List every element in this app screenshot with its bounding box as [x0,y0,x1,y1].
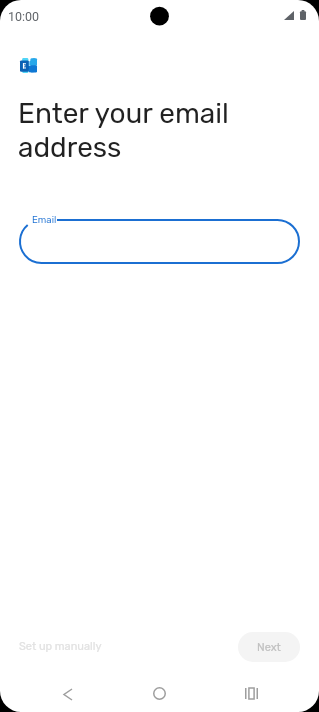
button[interactable]: Recent apps [231,673,271,712]
staticText: Next [257,641,281,654]
staticText: Enter your email address [18,97,229,164]
staticText: 10:00 [8,9,40,24]
staticText: Email [32,214,57,225]
staticText: Set up manually [19,640,102,653]
button[interactable]: Back [48,674,88,712]
button[interactable]: Email [19,219,300,264]
button[interactable]: Next [238,632,300,662]
button[interactable]: Home [139,673,179,712]
button[interactable]: Set up manually [11,633,110,660]
